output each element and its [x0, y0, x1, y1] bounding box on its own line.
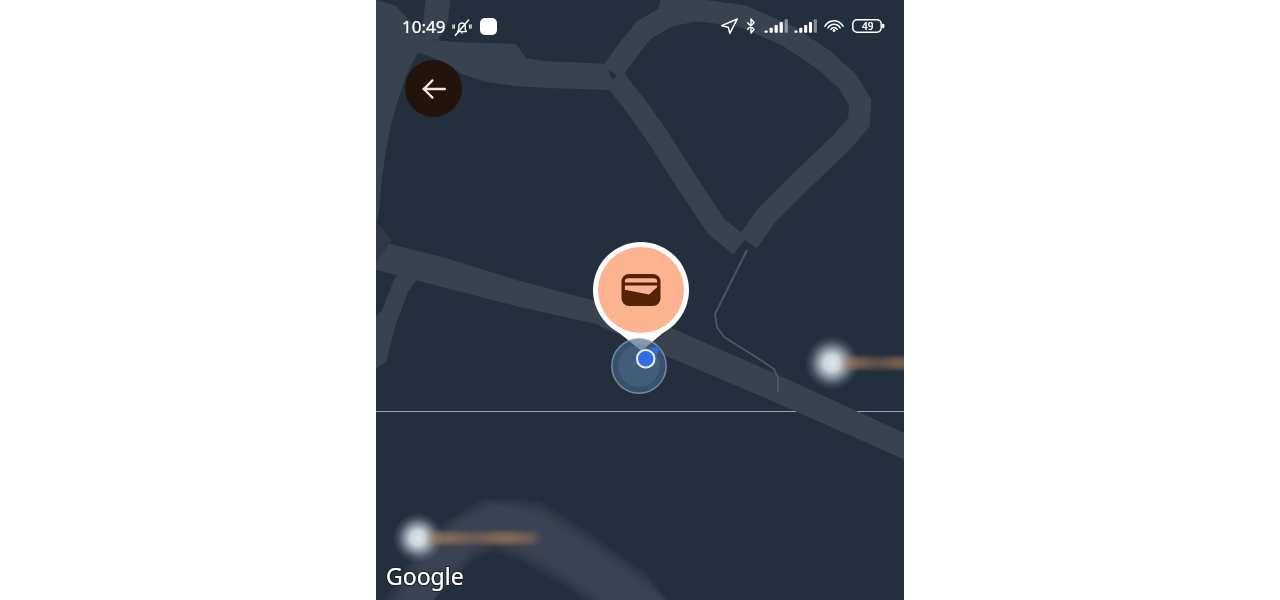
button[interactable]: Your location [611, 338, 667, 394]
staticText: Google [386, 559, 464, 590]
staticText: 49 [862, 19, 874, 33]
staticText: Google [387, 561, 465, 592]
staticText: Google [386, 561, 464, 592]
staticText: Google [385, 560, 463, 591]
staticText: Google [386, 560, 464, 591]
staticText: Google [385, 561, 463, 592]
button[interactable]: Wallet place marker [593, 242, 689, 338]
staticText: Google [387, 560, 465, 591]
staticText: 10:49 [402, 15, 446, 38]
staticText: Google [387, 559, 465, 590]
button[interactable]: Back [405, 60, 462, 117]
staticText: Google [385, 559, 463, 590]
